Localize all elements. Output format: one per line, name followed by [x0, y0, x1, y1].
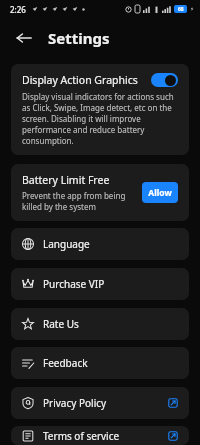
- button[interactable]: Privacy Policy: [11, 387, 189, 419]
- button[interactable]: Rate Us: [11, 308, 189, 340]
- staticText: Display visual indicators for actions su…: [22, 91, 178, 146]
- button[interactable]: Battery Limit Free: [11, 164, 189, 221]
- staticText: Settings: [48, 28, 110, 48]
- staticText: Display Action Graphics: [22, 73, 151, 87]
- button[interactable]: Language: [11, 228, 189, 260]
- staticText: Terms of service: [43, 429, 168, 443]
- staticText: Feedback: [43, 356, 178, 370]
- staticText: Battery Limit Free: [22, 173, 110, 187]
- button[interactable]: Purchase VIP: [11, 268, 189, 300]
- button[interactable]: Feedback: [11, 347, 189, 379]
- button[interactable]: Terms of service: [11, 426, 189, 445]
- staticText: 68: [178, 6, 184, 13]
- staticText: Purchase VIP: [43, 277, 178, 291]
- staticText: Privacy Policy: [43, 396, 168, 410]
- staticText: Allow: [148, 187, 172, 199]
- button[interactable]: Display Action Graphics: [11, 64, 189, 155]
- staticText: Rate Us: [43, 317, 178, 331]
- button[interactable]: Display Action Graphics toggle: [151, 73, 178, 87]
- button[interactable]: Allow: [142, 182, 178, 203]
- staticText: Prevent the app from being killed by the…: [22, 190, 136, 212]
- button[interactable]: Back: [12, 26, 36, 50]
- staticText: Language: [43, 237, 178, 251]
- staticText: 2:26: [10, 4, 26, 15]
